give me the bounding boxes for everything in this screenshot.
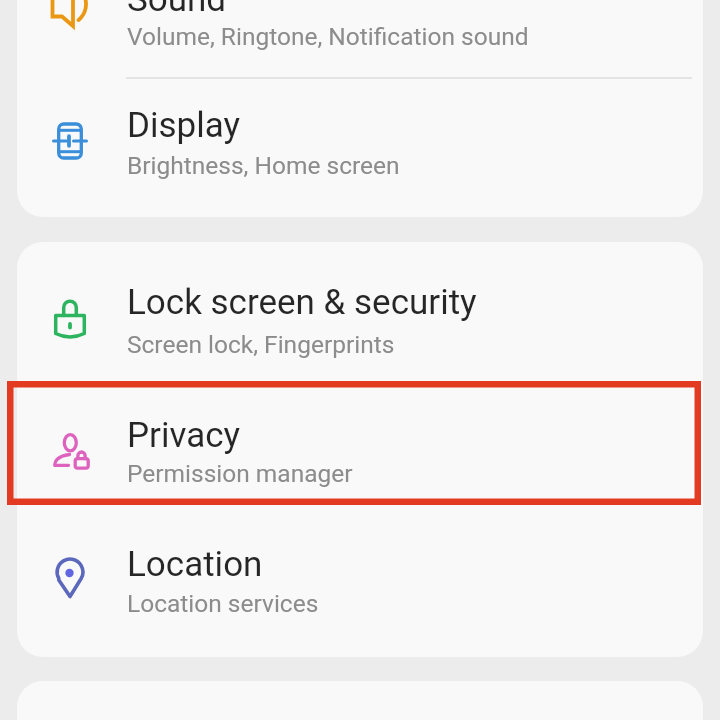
button[interactable] [17,242,703,381]
button[interactable] [17,78,703,217]
staticText: Permission manager [127,459,353,488]
staticText: Privacy [127,415,241,456]
button[interactable] [17,505,703,657]
staticText: Volume, Ringtone, Notification sound [127,22,529,51]
staticText: Brightness, Home screen [127,151,400,180]
button[interactable] [17,381,703,505]
staticText: Location [127,544,263,585]
button[interactable] [17,0,703,78]
staticText: Sound [127,0,227,20]
staticText: Location services [127,589,319,618]
staticText: Screen lock, Fingerprints [127,330,395,359]
staticText: Lock screen & security [127,282,477,323]
staticText: Display [127,105,241,146]
